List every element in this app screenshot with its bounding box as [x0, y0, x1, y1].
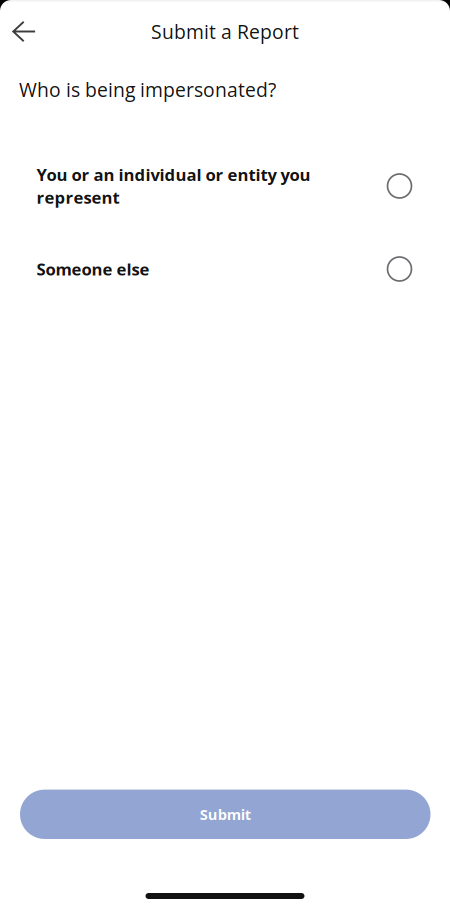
staticText: Someone else — [36, 258, 149, 280]
staticText: Submit — [200, 804, 251, 824]
staticText: You or an individual or entity you repre… — [36, 163, 310, 209]
staticText: Submit a Report — [151, 18, 299, 45]
button[interactable]: Someone else — [0, 257, 450, 281]
button[interactable]: Back — [0, 10, 52, 53]
button[interactable]: You or an individual or entity you repre… — [0, 164, 450, 208]
button[interactable]: Submit — [20, 790, 430, 839]
staticText: Who is being impersonated? — [19, 76, 276, 103]
